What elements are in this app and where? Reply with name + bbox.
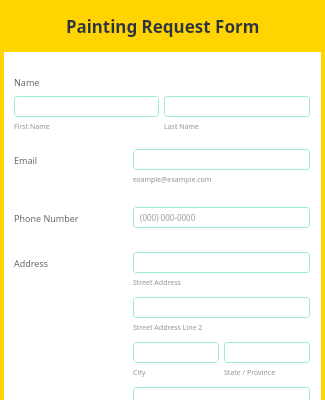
- button[interactable]: Phone Number: [133, 207, 310, 228]
- button[interactable]: Street Address: [133, 252, 310, 273]
- staticText: Name: [14, 76, 40, 88]
- button[interactable]: Last Name: [164, 96, 310, 117]
- button[interactable]: First Name: [14, 96, 159, 117]
- staticText: Email: [14, 154, 38, 166]
- staticText: State / Province: [224, 368, 276, 378]
- staticText: First Name: [14, 122, 50, 132]
- button[interactable]: Street Address Line 2: [133, 297, 310, 318]
- staticText: City: [133, 368, 146, 378]
- staticText: Street Address Line 2: [133, 323, 203, 333]
- staticText: Address: [14, 257, 49, 269]
- button[interactable]: Email: [133, 149, 310, 170]
- button[interactable]: Postal / Zip Code: [133, 387, 310, 400]
- staticText: example@example.com: [133, 175, 212, 185]
- staticText: Painting Request Form: [66, 15, 260, 38]
- staticText: Last Name: [164, 122, 200, 132]
- staticText: (000) 000-0000: [140, 212, 196, 223]
- staticText: Street Address: [133, 278, 181, 288]
- button[interactable]: State / Province: [224, 342, 310, 363]
- button[interactable]: City: [133, 342, 219, 363]
- staticText: Phone Number: [14, 212, 79, 224]
